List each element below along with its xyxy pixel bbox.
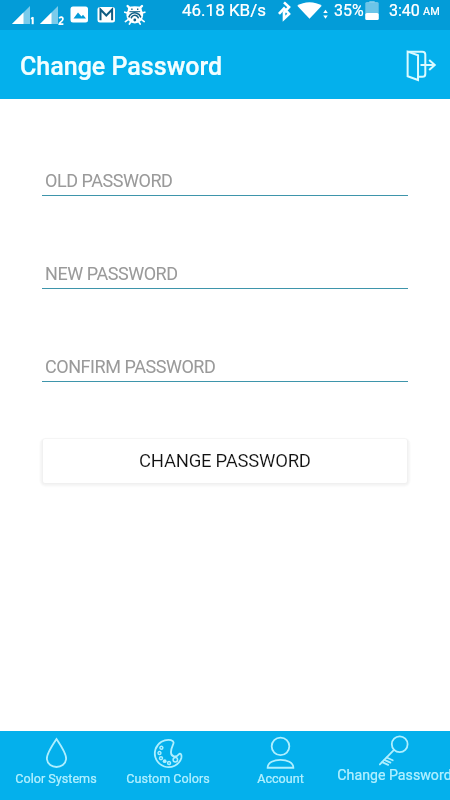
- button[interactable]: OLD PASSWORD: [42, 170, 408, 196]
- staticText: CONFIRM PASSWORD: [45, 356, 216, 377]
- staticText: Custom Colors: [126, 771, 210, 786]
- staticText: Color Systems: [15, 771, 97, 786]
- staticText: Change Password: [337, 767, 450, 784]
- button[interactable]: CONFIRM PASSWORD: [42, 356, 408, 382]
- button[interactable]: Logout: [397, 42, 443, 88]
- button[interactable]: NEW PASSWORD: [42, 263, 408, 289]
- button[interactable]: Account: [224, 731, 337, 786]
- staticText: 46.18 KB/s: [182, 0, 266, 20]
- staticText: CHANGE PASSWORD: [139, 450, 311, 472]
- button[interactable]: CHANGE PASSWORD: [43, 439, 407, 483]
- button[interactable]: Change Password: [337, 731, 450, 784]
- button[interactable]: Color Systems: [0, 731, 112, 786]
- staticText: NEW PASSWORD: [45, 263, 178, 284]
- staticText: OLD PASSWORD: [45, 170, 173, 191]
- staticText: Change Password: [20, 52, 223, 81]
- button[interactable]: Custom Colors: [112, 731, 224, 786]
- staticText: Account: [257, 771, 304, 786]
- staticText: 35%: [334, 1, 364, 20]
- staticText: AM: [423, 5, 440, 18]
- staticText: 3:40: [389, 1, 420, 20]
